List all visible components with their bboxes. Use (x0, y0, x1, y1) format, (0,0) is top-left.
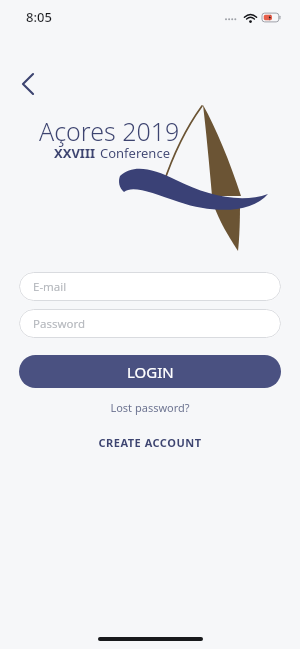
staticText: 8:05 (26, 8, 52, 26)
staticText: Açores 2019 (39, 114, 180, 148)
staticText: XXVIII (54, 144, 96, 162)
button[interactable]: Lost password? (102, 397, 198, 418)
staticText: Password (33, 316, 86, 332)
button[interactable]: CREATE ACCOUNT (90, 432, 210, 453)
button[interactable]: E-mail (19, 272, 281, 301)
button[interactable]: Password (19, 309, 281, 338)
staticText: CREATE ACCOUNT (98, 435, 202, 450)
staticText: LOGIN (127, 362, 174, 382)
staticText: Conference (100, 144, 170, 162)
button[interactable]: LOGIN (19, 355, 281, 388)
button[interactable]: Back (8, 64, 48, 104)
staticText: E-mail (33, 279, 67, 295)
staticText: Lost password? (110, 400, 190, 415)
